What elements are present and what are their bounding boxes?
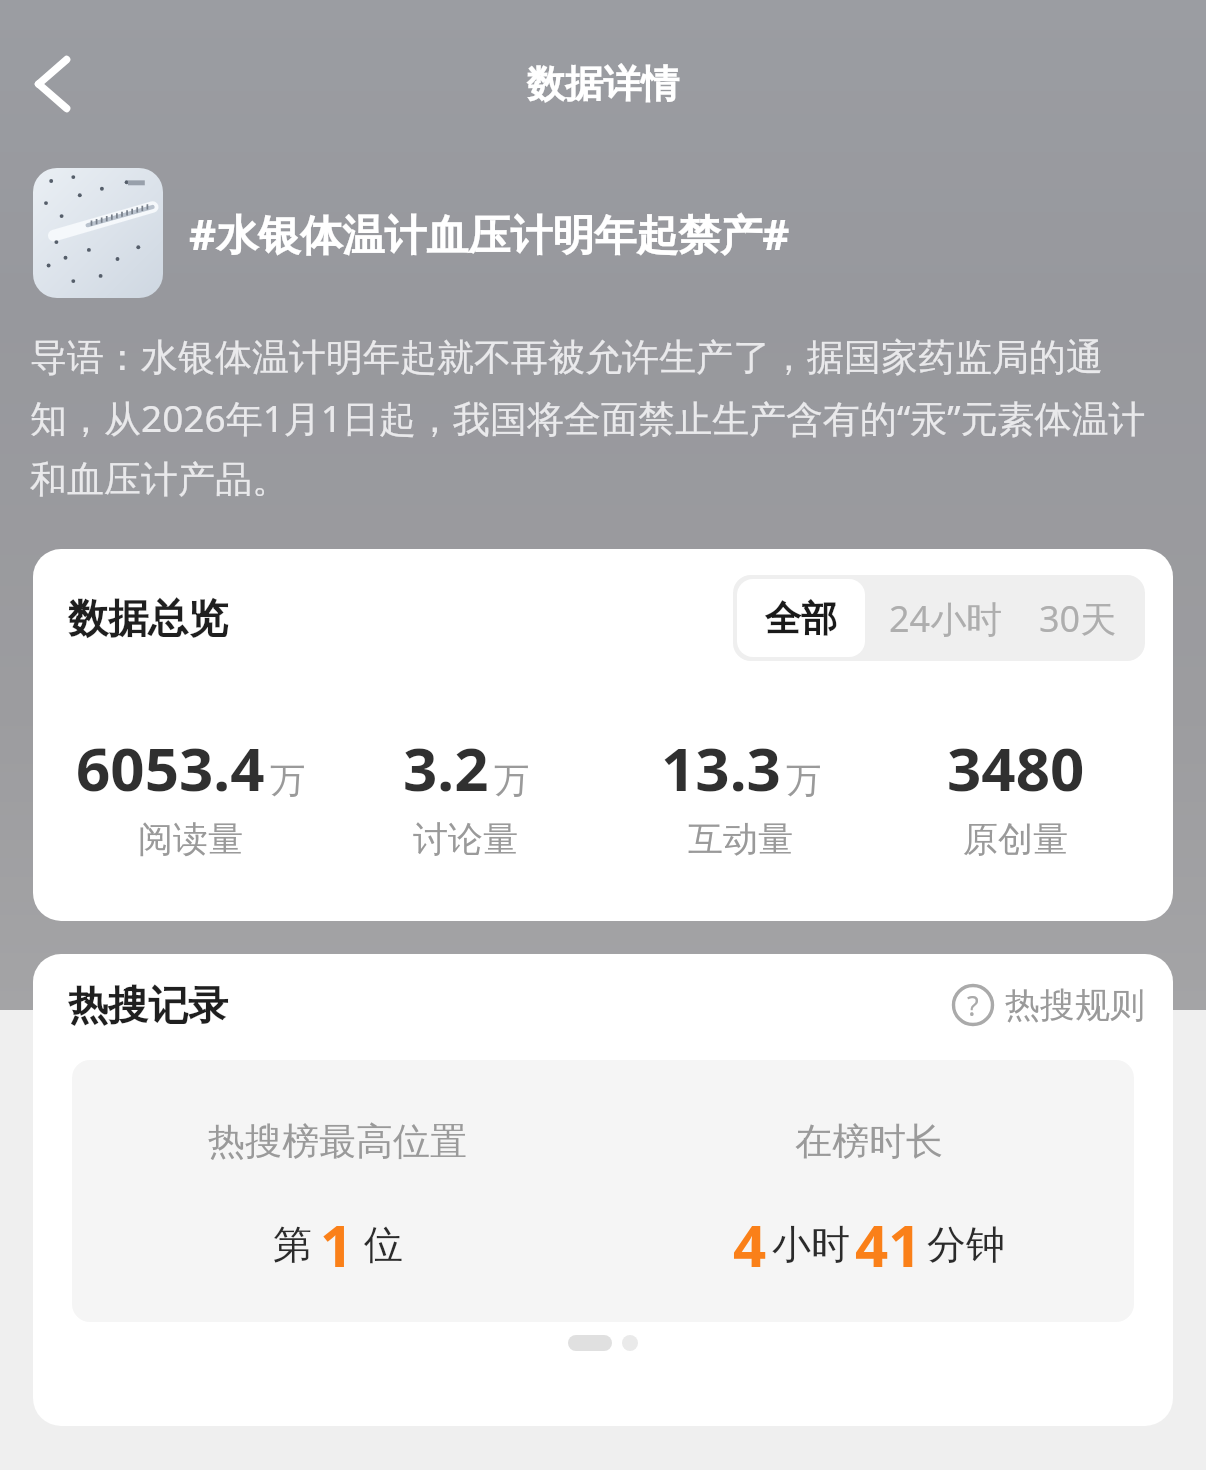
button[interactable]: Back <box>12 43 94 125</box>
button[interactable]: #水银体温计血压计明年起禁产# <box>33 168 1186 298</box>
button[interactable]: 3480 <box>878 727 1153 861</box>
staticText: 3.2 <box>403 727 489 809</box>
staticText: 热搜规则 <box>1005 983 1145 1027</box>
staticText: 30天 <box>1039 594 1117 643</box>
button[interactable]: 全部 <box>737 579 865 657</box>
staticText: 万 <box>786 758 821 802</box>
staticText: 讨论量 <box>413 817 518 861</box>
staticText: 6053.4 <box>76 727 265 809</box>
button[interactable]: 13.3 <box>603 727 878 861</box>
button[interactable]: 24小时 <box>869 575 1023 661</box>
staticText: 原创量 <box>963 817 1068 861</box>
staticText: 导语：水银体温计明年起就不再被允许生产了，据国家药监局的通知，从2026年1月1… <box>30 334 1176 503</box>
button[interactable]: 6053.4 <box>53 727 328 861</box>
staticText: 阅读量 <box>138 817 243 861</box>
staticText: ? <box>967 987 979 1024</box>
staticText: 4 <box>733 1205 767 1284</box>
staticText: 第 <box>273 1220 312 1269</box>
staticText: #水银体温计血压计明年起禁产# <box>189 205 790 262</box>
staticText: 数据详情 <box>527 60 679 108</box>
staticText: 小时 <box>772 1220 850 1269</box>
staticText: 数据总览 <box>68 593 228 643</box>
button[interactable]: 30天 <box>1023 575 1145 661</box>
button[interactable]: 在榜时长 <box>603 1060 1134 1322</box>
staticText: 全部 <box>765 596 837 641</box>
staticText: 13.3 <box>661 727 781 809</box>
staticText: 互动量 <box>688 817 793 861</box>
staticText: 1 <box>320 1205 354 1284</box>
staticText: 热搜记录 <box>68 980 228 1030</box>
staticText: 41 <box>855 1205 922 1284</box>
button[interactable]: 热搜榜最高位置 <box>72 1060 603 1322</box>
staticText: 3480 <box>947 727 1085 809</box>
button[interactable]: 3.2 <box>328 727 603 861</box>
staticText: 在榜时长 <box>795 1118 943 1165</box>
staticText: 万 <box>494 758 529 802</box>
button[interactable]: ? <box>951 983 1145 1027</box>
staticText: 24小时 <box>889 594 1003 643</box>
staticText: 热搜榜最高位置 <box>208 1118 467 1165</box>
staticText: 分钟 <box>927 1220 1005 1269</box>
staticText: 位 <box>364 1220 403 1269</box>
staticText: 万 <box>270 758 305 802</box>
